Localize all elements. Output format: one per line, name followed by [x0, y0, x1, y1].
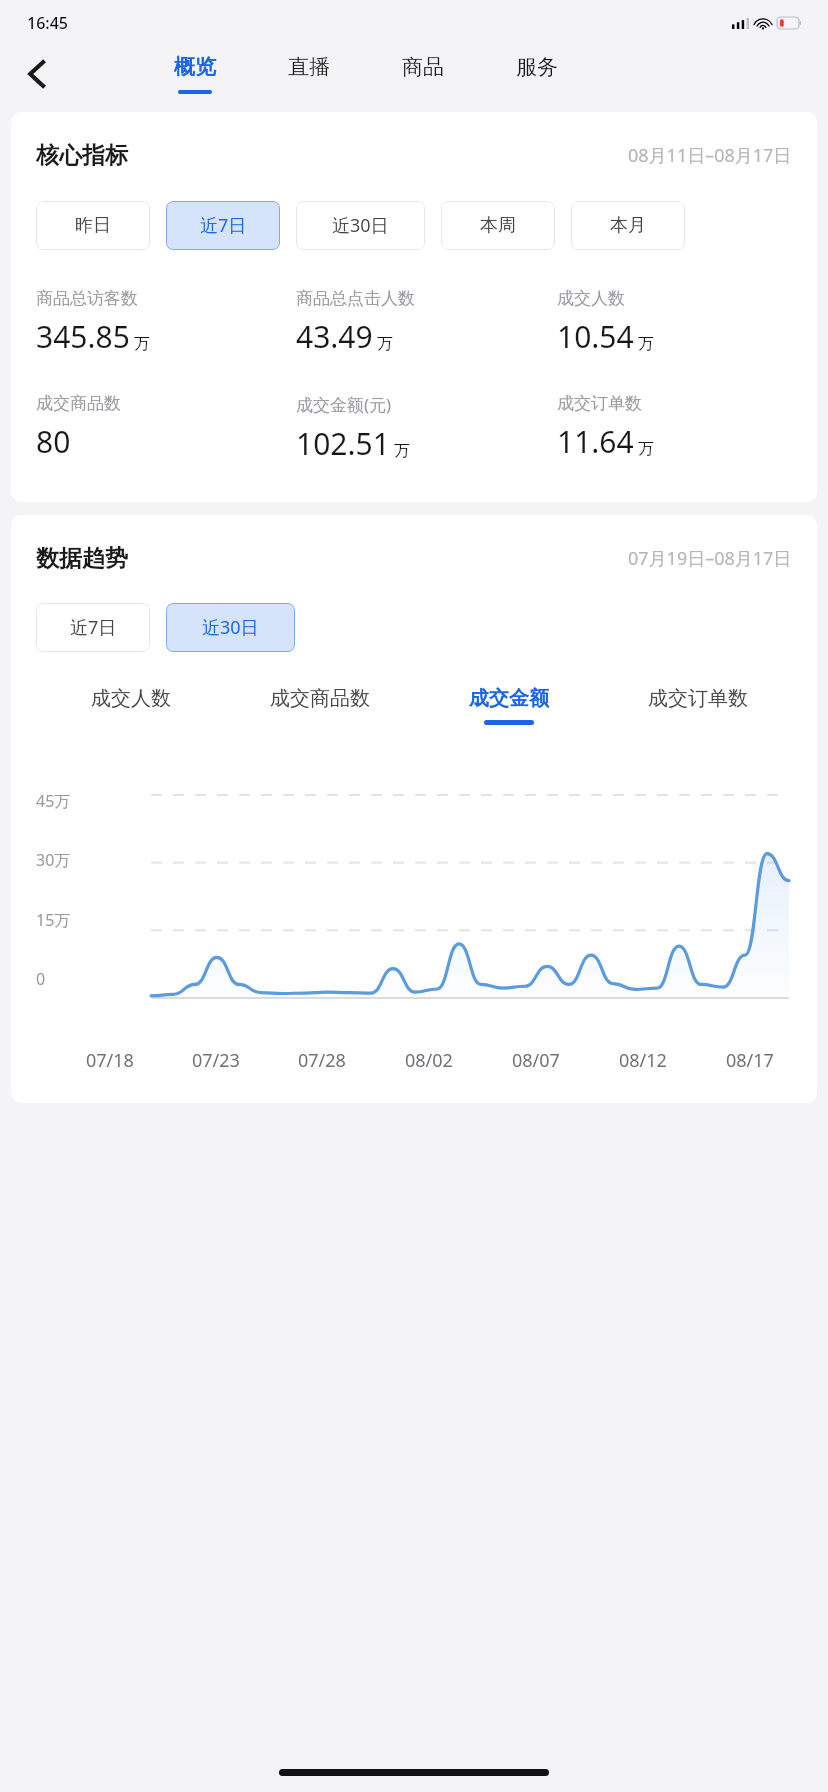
staticText: 成交人数 [557, 288, 625, 309]
staticText: 服务 [516, 54, 558, 80]
staticText: 0 [36, 968, 46, 990]
staticText: 成交商品数 [270, 686, 370, 711]
staticText: 345.85 [36, 316, 130, 357]
staticText: 商品总访客数 [36, 288, 138, 309]
staticText: 102.51 [296, 423, 390, 464]
button[interactable]: 本月 [571, 201, 685, 250]
button[interactable]: 近7日 [36, 603, 150, 652]
staticText: 近30日 [332, 213, 389, 238]
staticText: 16:45 [27, 12, 68, 34]
staticText: 07/18 [86, 1048, 134, 1073]
button[interactable]: 成交金额 [414, 686, 603, 725]
button[interactable]: Back [10, 47, 64, 101]
button[interactable]: 商品 [366, 45, 480, 102]
staticText: 15万 [36, 909, 71, 931]
staticText: 10.54 [557, 316, 634, 357]
button[interactable]: 成交订单数 [603, 686, 792, 725]
staticText: 本月 [610, 214, 646, 237]
staticText: 直播 [288, 54, 330, 80]
staticText: 43.49 [296, 316, 373, 357]
staticText: 07/28 [298, 1048, 346, 1073]
button[interactable]: 昨日 [36, 201, 150, 250]
staticText: 数据趋势 [36, 544, 128, 573]
staticText: 07/23 [192, 1048, 240, 1073]
button[interactable]: 近7日 [166, 201, 280, 250]
staticText: 成交订单数 [648, 686, 748, 711]
staticText: 成交订单数 [557, 393, 642, 414]
staticText: 商品 [402, 54, 444, 80]
button[interactable]: 成交商品数 [225, 686, 414, 725]
button[interactable]: 概览 [138, 45, 252, 102]
staticText: 成交金额(元) [296, 393, 392, 416]
staticText: 07月19日–08月17日 [628, 546, 792, 571]
staticText: 万 [638, 439, 654, 459]
button[interactable]: 直播 [252, 45, 366, 102]
button[interactable]: 近30日 [166, 603, 295, 652]
staticText: 昨日 [75, 214, 111, 237]
staticText: 45万 [36, 790, 71, 812]
staticText: 万 [377, 334, 393, 354]
staticText: 成交金额 [469, 686, 549, 711]
staticText: 近7日 [200, 213, 247, 238]
button[interactable]: 成交人数 [36, 686, 225, 725]
button[interactable]: 服务 [480, 45, 594, 102]
staticText: 11.64 [557, 421, 634, 462]
staticText: 万 [638, 334, 654, 354]
staticText: 成交人数 [91, 686, 171, 711]
staticText: 08月11日–08月17日 [628, 143, 792, 168]
staticText: 成交商品数 [36, 393, 121, 414]
staticText: 近7日 [70, 615, 117, 640]
staticText: 08/12 [619, 1048, 667, 1073]
staticText: 80 [36, 421, 71, 462]
staticText: 08/17 [726, 1048, 774, 1073]
staticText: 08/02 [405, 1048, 453, 1073]
staticText: 商品总点击人数 [296, 288, 415, 309]
staticText: 概览 [174, 54, 216, 80]
staticText: 30万 [36, 849, 71, 871]
staticText: 本周 [480, 214, 516, 237]
staticText: 万 [394, 441, 410, 461]
button[interactable]: 近30日 [296, 201, 425, 250]
button[interactable]: 本周 [441, 201, 555, 250]
staticText: 万 [134, 334, 150, 354]
staticText: 近30日 [202, 615, 259, 640]
staticText: 核心指标 [36, 141, 128, 170]
staticText: 08/07 [512, 1048, 560, 1073]
